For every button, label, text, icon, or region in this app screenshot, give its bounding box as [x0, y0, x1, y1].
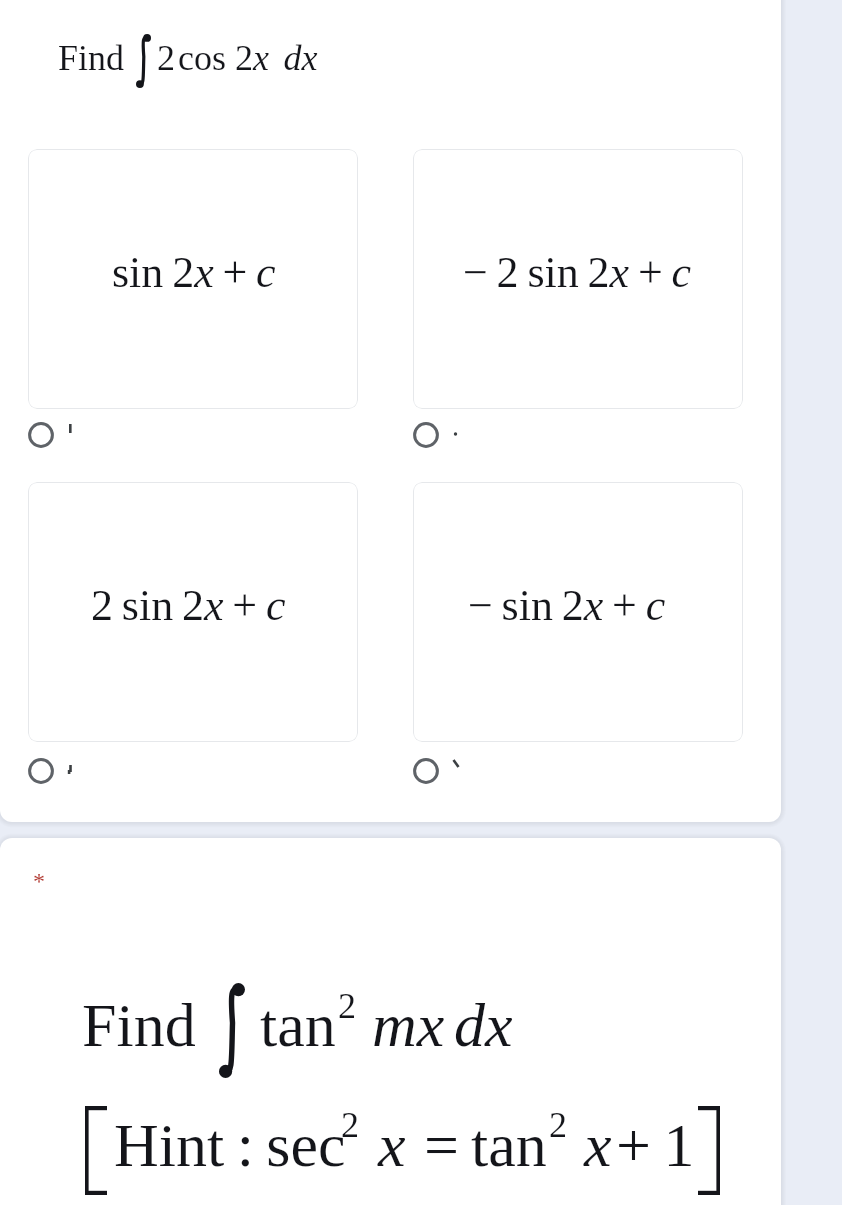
staticText: mx	[372, 991, 445, 1060]
staticText: *	[33, 868, 45, 895]
button[interactable]: Choose option 2 sin 2x + c	[28, 754, 198, 788]
button[interactable]: Choose option minus sin 2x + c	[413, 754, 583, 788]
button[interactable]: Choose option minus 2 sin 2x + c	[413, 418, 583, 452]
staticText: tan	[260, 991, 336, 1060]
staticText: 2	[338, 986, 356, 1026]
staticText: Find	[82, 991, 196, 1060]
button[interactable]: Choose option sin 2x + c	[28, 418, 198, 452]
staticText: 2 sin 2x + c	[91, 581, 286, 630]
staticText: tan	[471, 1111, 547, 1180]
staticText: sin 2x + c	[112, 248, 276, 297]
staticText: − sin 2x + c	[468, 581, 666, 630]
staticText: 2 cos 2x dx	[157, 38, 318, 78]
staticText: dx	[454, 991, 513, 1060]
button[interactable]: Option minus 2 sin 2x + c	[413, 149, 743, 409]
button[interactable]: Option sin 2x + c	[28, 149, 358, 409]
staticText: + 1	[616, 1111, 695, 1180]
staticText: Hint : sec	[114, 1111, 346, 1180]
staticText: − 2 sin 2x + c	[463, 248, 692, 297]
button[interactable]: Option minus sin 2x + c	[413, 482, 743, 742]
staticText: x	[584, 1111, 612, 1180]
staticText: Find	[58, 38, 125, 78]
staticText: x	[378, 1111, 406, 1180]
staticText: =	[424, 1111, 459, 1180]
staticText: 2	[341, 1105, 359, 1145]
staticText: 2	[549, 1105, 567, 1145]
button[interactable]: Option 2 sin 2x + c	[28, 482, 358, 742]
